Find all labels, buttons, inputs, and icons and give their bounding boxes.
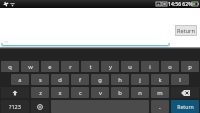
button[interactable]: Return <box>176 26 196 35</box>
staticText: v <box>99 89 102 97</box>
staticText: c <box>79 89 82 97</box>
staticText: s <box>39 76 42 84</box>
staticText: n <box>138 89 142 97</box>
button[interactable]: s <box>31 74 49 85</box>
button[interactable]: Backspace <box>171 87 199 98</box>
button[interactable]: ?123 <box>1 100 29 113</box>
staticText: w <box>28 63 33 71</box>
staticText: r <box>69 63 72 71</box>
staticText: b <box>118 89 122 97</box>
button[interactable]: j <box>131 74 149 85</box>
button[interactable]: p <box>181 61 199 72</box>
button[interactable]: o <box>161 61 179 72</box>
staticText: Return <box>177 27 195 35</box>
staticText: a <box>18 76 22 84</box>
staticText: f <box>79 76 81 84</box>
staticText: e <box>48 63 52 71</box>
staticText: u <box>128 63 132 71</box>
button[interactable]: n <box>131 87 149 98</box>
staticText: p <box>188 63 192 71</box>
staticText: l <box>179 76 181 84</box>
staticText: i <box>149 63 151 71</box>
button[interactable]: Shift <box>1 87 29 98</box>
button[interactable]: d <box>51 74 69 85</box>
staticText: y <box>109 63 112 71</box>
button[interactable]: k <box>151 74 169 85</box>
button[interactable]: i <box>141 61 159 72</box>
button[interactable]: h <box>111 74 129 85</box>
button[interactable]: c <box>71 87 89 98</box>
button[interactable]: f <box>71 74 89 85</box>
staticText: k <box>158 76 162 84</box>
staticText: o <box>168 63 172 71</box>
button[interactable]: y <box>101 61 119 72</box>
button[interactable]: u <box>121 61 139 72</box>
staticText: h <box>118 76 122 84</box>
staticText: t <box>89 63 92 71</box>
button[interactable]: v <box>91 87 109 98</box>
staticText: 14:56 62% <box>168 1 193 8</box>
staticText: ?123 <box>9 103 21 110</box>
staticText: z <box>39 89 42 97</box>
button[interactable]: b <box>111 87 129 98</box>
button[interactable]: Return <box>171 100 199 113</box>
button[interactable]: m <box>151 87 169 98</box>
staticText: m <box>157 89 163 97</box>
button[interactable]: x <box>51 87 69 98</box>
staticText: g <box>98 76 102 84</box>
button[interactable]: a <box>11 74 29 85</box>
button[interactable]: Emoji <box>31 100 49 113</box>
button[interactable]: w <box>21 61 39 72</box>
button[interactable]: r <box>61 61 79 72</box>
staticText: Return <box>177 103 194 110</box>
button[interactable]: l <box>171 74 189 85</box>
button[interactable]: g <box>91 74 109 85</box>
button[interactable]: z <box>31 87 49 98</box>
staticText: . <box>159 102 161 112</box>
staticText: q <box>8 63 12 71</box>
staticText: d <box>58 76 62 84</box>
button[interactable]: q <box>1 61 19 72</box>
button[interactable]: t <box>81 61 99 72</box>
button[interactable]: . <box>151 100 169 113</box>
staticText: x <box>58 89 62 97</box>
staticText: j <box>139 76 141 84</box>
button[interactable]: e <box>41 61 59 72</box>
